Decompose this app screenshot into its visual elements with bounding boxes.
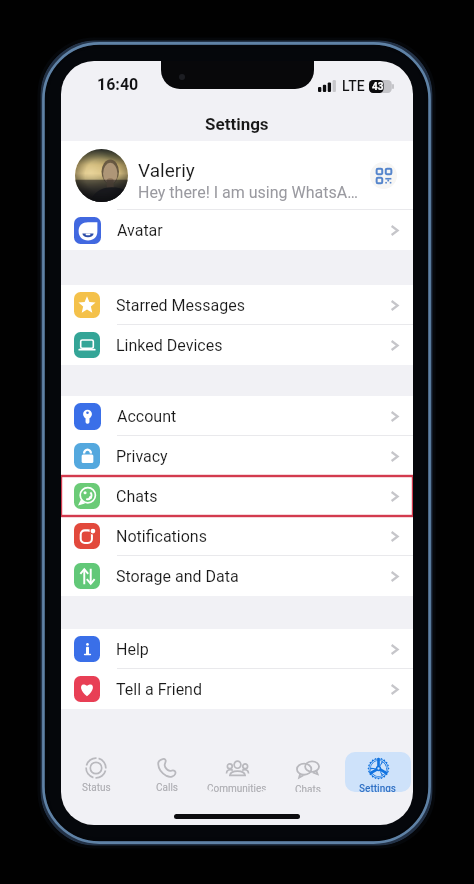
button[interactable]: Calls [134, 752, 200, 792]
staticText: Privacy [116, 447, 168, 466]
staticText: Linked Devices [116, 336, 223, 355]
button[interactable]: Chats [275, 752, 341, 792]
button[interactable]: Show QR code [370, 162, 397, 189]
button[interactable]: Tell a Friend [61, 669, 413, 709]
staticText: Avatar [117, 221, 163, 240]
button[interactable]: Starred Messages [61, 285, 413, 325]
staticText: Settings [359, 783, 397, 792]
staticText: Notifications [116, 527, 207, 546]
staticText: Chats [295, 784, 321, 792]
staticText: 16:40 [97, 75, 139, 94]
button[interactable]: Notifications [61, 516, 413, 556]
button[interactable]: Settings [345, 752, 411, 792]
button[interactable]: Valeriy [61, 141, 413, 210]
button[interactable]: Status [63, 752, 129, 792]
button[interactable]: Storage and Data [61, 556, 413, 596]
button[interactable]: Chats [61, 476, 413, 516]
button[interactable]: Account [61, 396, 413, 436]
staticText: Tell a Friend [116, 680, 202, 699]
staticText: Settings [205, 114, 269, 134]
button[interactable]: Communities [204, 752, 270, 792]
button[interactable]: Linked Devices [61, 325, 413, 365]
staticText: 43 [372, 81, 384, 93]
staticText: Status [82, 782, 111, 792]
staticText: Valeriy [138, 159, 195, 181]
staticText: Starred Messages [116, 296, 246, 315]
button[interactable]: Avatar [61, 210, 413, 250]
staticText: Storage and Data [116, 567, 239, 586]
staticText: Chats [116, 487, 158, 506]
staticText: Communities [207, 783, 267, 792]
staticText: Account [117, 407, 177, 426]
staticText: Calls [156, 782, 178, 792]
staticText: LTE [342, 78, 365, 94]
button[interactable]: Privacy [61, 436, 413, 476]
staticText: Help [116, 640, 149, 659]
button[interactable]: Help [61, 629, 413, 669]
staticText: Hey there! I am using WhatsA… [138, 183, 358, 202]
